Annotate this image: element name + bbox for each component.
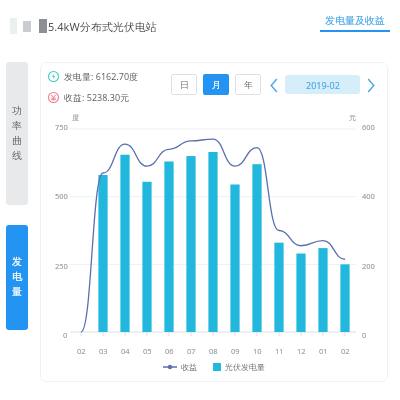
button[interactable]: Previous month: [267, 75, 281, 95]
staticText: 曲: [12, 134, 22, 147]
staticText: 发: [12, 255, 22, 268]
button[interactable]: Next month: [364, 75, 378, 95]
staticText: 400: [362, 191, 375, 201]
staticText: 发电量: 6162.70度: [64, 70, 139, 82]
staticText: 日: [180, 79, 189, 90]
staticText: 月: [212, 79, 221, 90]
button[interactable]: 年: [235, 74, 261, 95]
staticText: 11: [275, 346, 284, 356]
staticText: 电: [12, 270, 22, 283]
staticText: 03: [99, 346, 108, 356]
staticText: 750: [55, 122, 68, 132]
staticText: 04: [121, 346, 130, 356]
button[interactable]: 日: [171, 74, 197, 95]
staticText: 600: [362, 122, 375, 132]
staticText: 度: [72, 113, 79, 122]
staticText: 0: [362, 330, 367, 340]
staticText: 08: [209, 346, 218, 356]
staticText: 250: [55, 261, 68, 271]
staticText: 07: [187, 346, 196, 356]
staticText: 500: [55, 191, 68, 201]
button[interactable]: 发电量及收益: [320, 14, 390, 32]
staticText: 0: [63, 330, 68, 340]
button[interactable]: 功: [6, 62, 28, 205]
staticText: 10: [253, 346, 262, 356]
staticText: 2019-02: [306, 79, 340, 91]
button[interactable]: 2019-02: [285, 75, 360, 94]
staticText: 02: [341, 346, 350, 356]
staticText: 率: [12, 119, 22, 132]
staticText: 光伏发电量: [225, 362, 265, 372]
staticText: 200: [362, 261, 375, 271]
staticText: 发电量及收益: [325, 14, 385, 27]
staticText: 5.4kW分布式光伏电站: [48, 19, 157, 34]
staticText: 05: [143, 346, 152, 356]
staticText: 02: [77, 346, 86, 356]
button[interactable]: 收益: [163, 362, 197, 372]
staticText: 年: [244, 79, 253, 90]
staticText: 量: [12, 285, 22, 298]
staticText: 01: [319, 346, 328, 356]
staticText: 元: [349, 113, 356, 122]
staticText: 线: [12, 149, 22, 162]
staticText: 收益: [181, 362, 197, 372]
staticText: 09: [231, 346, 240, 356]
staticText: 收益: 5238.30元: [64, 91, 130, 103]
staticText: 功: [12, 104, 22, 117]
staticText: 12: [297, 346, 306, 356]
staticText: 06: [165, 346, 174, 356]
button[interactable]: 月: [203, 74, 229, 95]
button[interactable]: 光伏发电量: [213, 362, 265, 372]
button[interactable]: 发: [6, 225, 28, 330]
